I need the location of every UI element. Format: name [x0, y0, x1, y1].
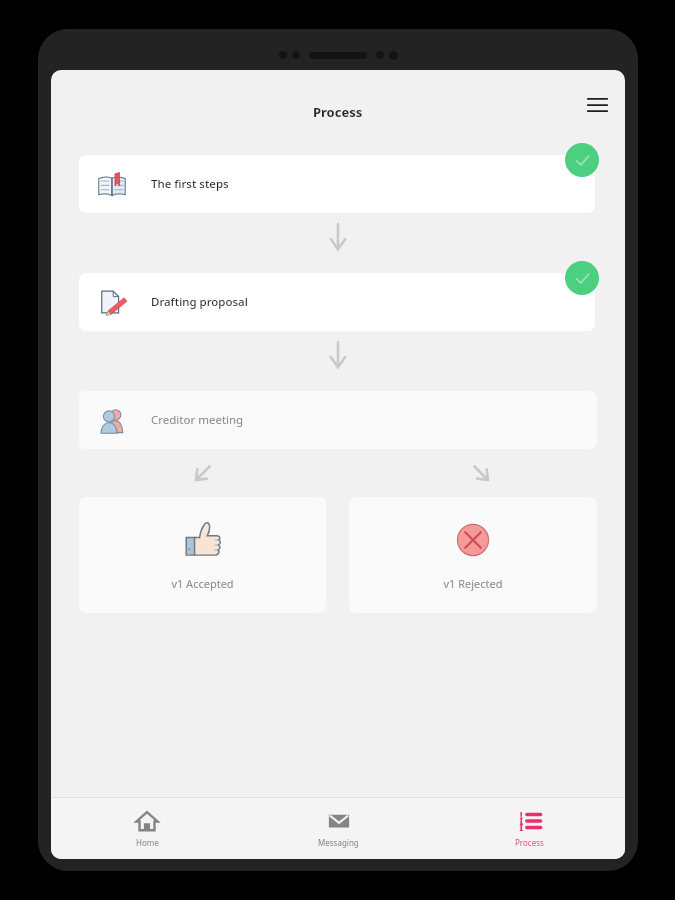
button[interactable]: v1 Accepted	[79, 497, 326, 613]
button[interactable]: Completed	[565, 261, 599, 295]
staticText: Drafting proposal	[151, 294, 248, 310]
staticText: Process	[313, 103, 363, 121]
staticText: Process	[515, 837, 544, 848]
button[interactable]: Menu	[577, 85, 617, 125]
button[interactable]: Home	[51, 798, 243, 859]
staticText: v1 Rejected	[443, 576, 503, 591]
staticText: The first steps	[151, 176, 229, 192]
staticText: v1 Accepted	[171, 576, 234, 591]
button[interactable]: The first steps	[79, 155, 595, 213]
button[interactable]: Completed	[565, 143, 599, 177]
button[interactable]: Drafting proposal	[79, 273, 595, 331]
button[interactable]: Creditor meeting	[79, 391, 597, 449]
staticText: Creditor meeting	[151, 412, 244, 428]
button[interactable]: v1 Rejected	[349, 497, 597, 613]
staticText: Messaging	[318, 837, 359, 848]
button[interactable]: Messaging	[243, 798, 434, 859]
staticText: Home	[136, 837, 159, 848]
button[interactable]: Process	[434, 798, 625, 859]
